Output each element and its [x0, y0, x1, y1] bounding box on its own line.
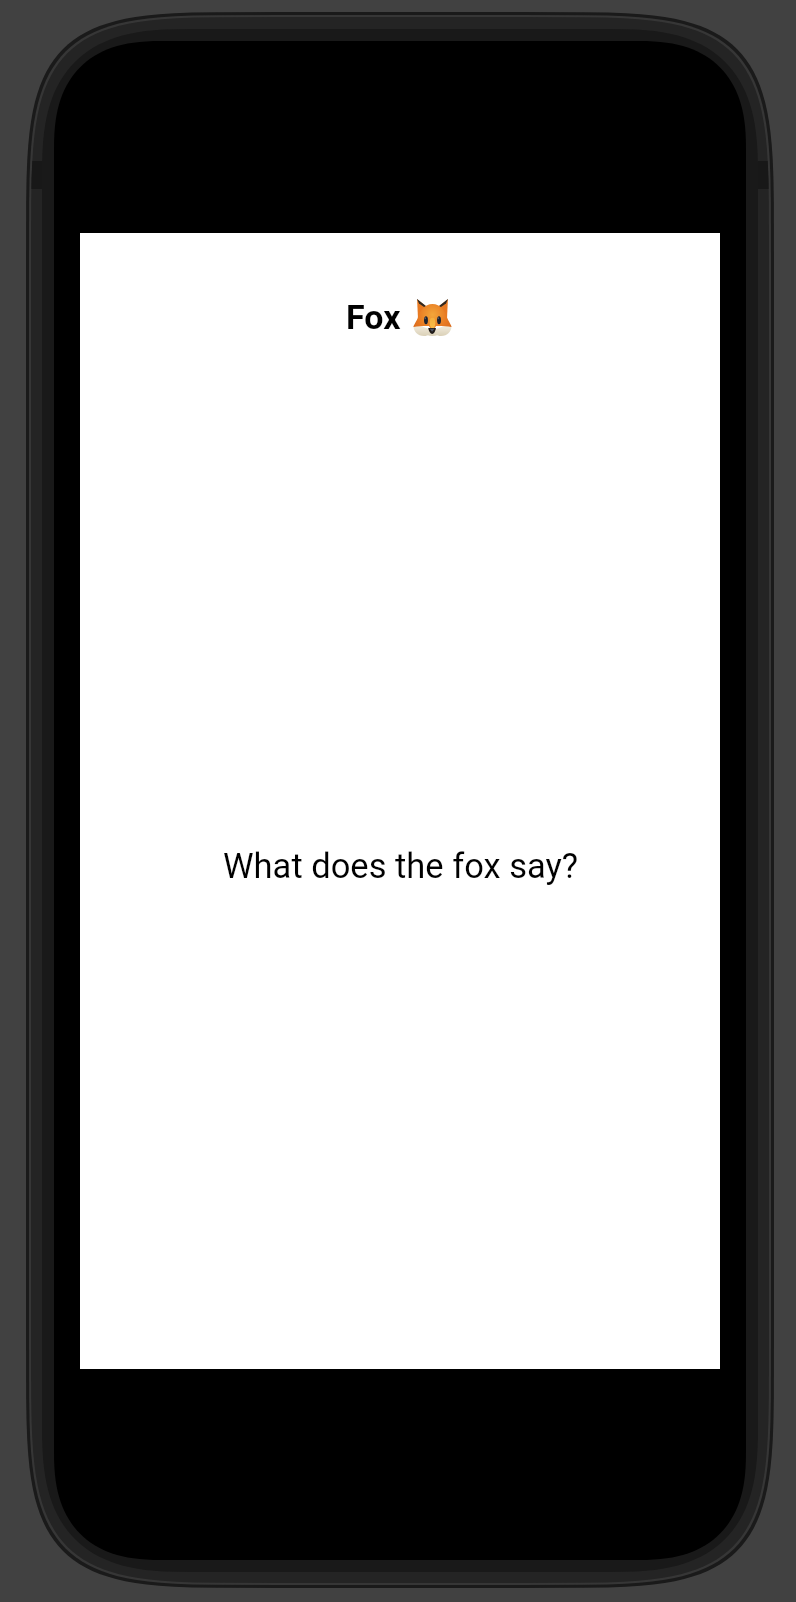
staticText: Fox — [346, 297, 401, 337]
button[interactable]: What does the fox say? — [223, 846, 579, 886]
other: Fox emoji — [413, 298, 452, 336]
staticText: What does the fox say? — [223, 846, 579, 886]
button[interactable]: Fox — [346, 297, 401, 337]
